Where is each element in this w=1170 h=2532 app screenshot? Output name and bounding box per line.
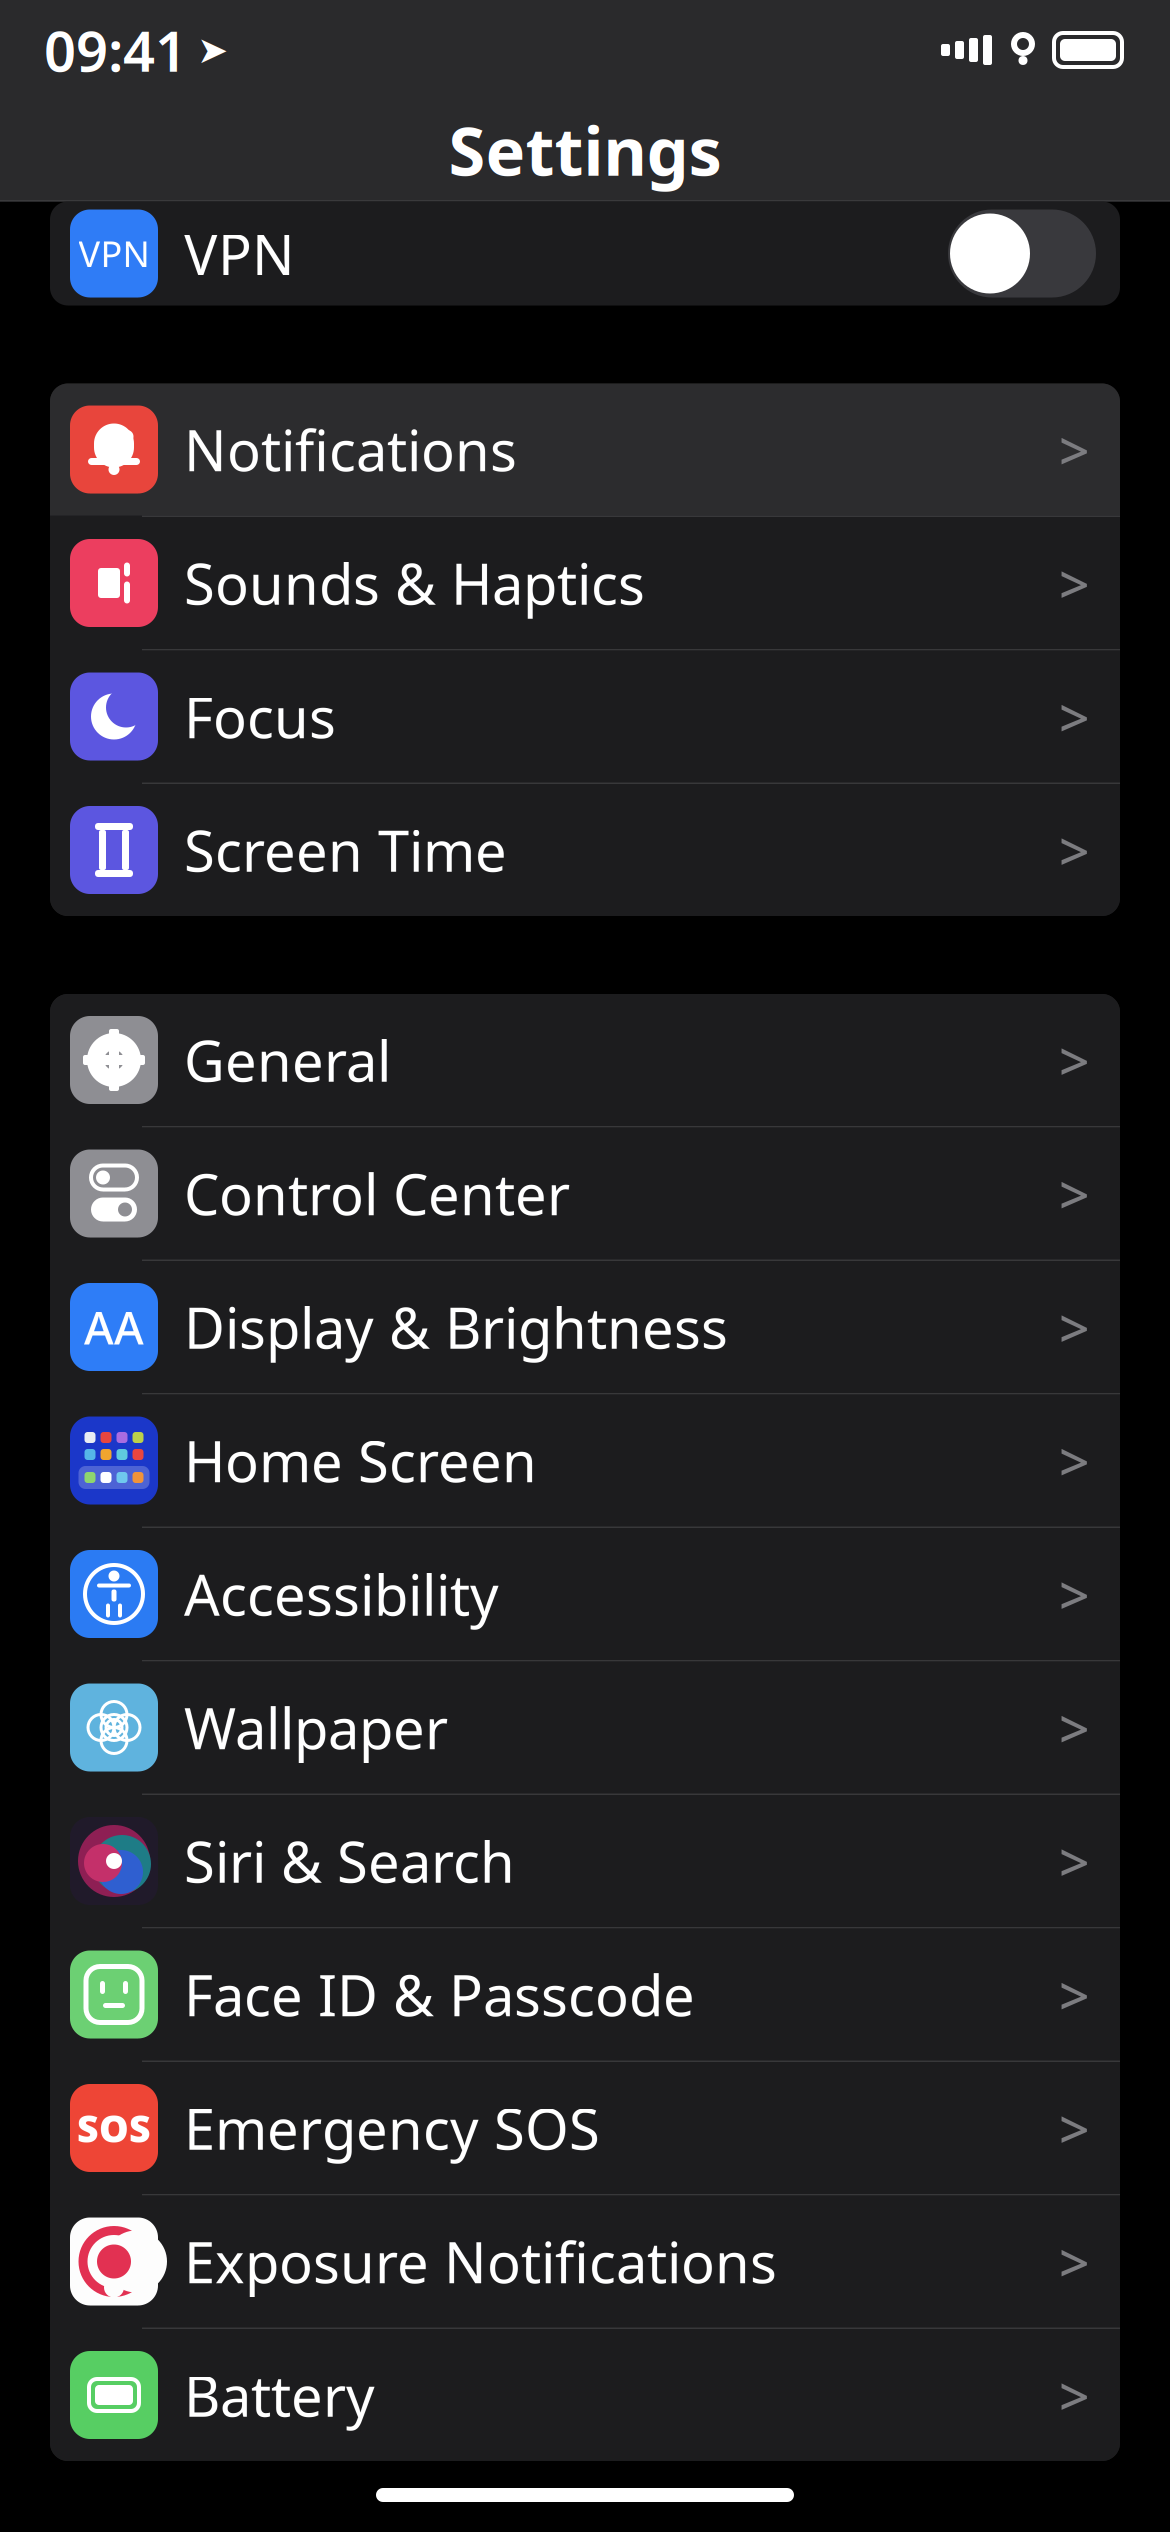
staticText: >: [1059, 681, 1090, 752]
staticText: >: [1059, 1959, 1090, 2030]
staticText: >: [1059, 2093, 1090, 2163]
button[interactable]: Accessibility: [50, 1528, 1120, 1660]
staticText: Screen Time: [184, 813, 507, 887]
button[interactable]: Focus: [50, 650, 1120, 782]
button[interactable]: VPN: [50, 201, 1120, 305]
staticText: VPN: [184, 216, 295, 291]
staticText: Home Screen: [184, 1423, 537, 1498]
staticText: Control Center: [184, 1156, 570, 1231]
staticText: SOS: [77, 2103, 151, 2153]
button[interactable]: Siri & Search: [50, 1795, 1120, 1927]
staticText: Wallpaper: [184, 1690, 448, 1765]
staticText: Settings: [448, 106, 721, 194]
staticText: Accessibility: [184, 1557, 499, 1631]
staticText: Display & Brightness: [184, 1290, 728, 1364]
staticText: >: [1059, 1692, 1090, 1763]
staticText: >: [1059, 1559, 1090, 1629]
button[interactable]: Face ID & Passcode: [50, 1928, 1120, 2060]
staticText: >: [1059, 1025, 1090, 1095]
staticText: >: [1059, 1158, 1090, 1229]
staticText: Exposure Notifications: [184, 2224, 777, 2299]
button[interactable]: Sounds & Haptics: [50, 517, 1120, 649]
staticText: Siri & Search: [184, 1824, 515, 1898]
staticText: >: [1059, 2226, 1090, 2297]
staticText: >: [1059, 414, 1090, 485]
staticText: General: [184, 1023, 391, 1097]
staticText: >: [1059, 1292, 1090, 1362]
staticText: Focus: [184, 679, 336, 754]
staticText: AA: [84, 1297, 144, 1357]
staticText: ➤: [197, 29, 228, 71]
button[interactable]: SOS: [50, 2062, 1120, 2194]
button[interactable]: Battery: [50, 2329, 1120, 2461]
staticText: Battery: [184, 2358, 375, 2432]
staticText: >: [1059, 2360, 1090, 2430]
staticText: >: [1059, 1425, 1090, 1496]
staticText: >: [1059, 548, 1090, 618]
button[interactable]: Screen Time: [50, 784, 1120, 916]
staticText: Face ID & Passcode: [184, 1957, 695, 2032]
button[interactable]: Wallpaper: [50, 1661, 1120, 1793]
button[interactable]: General: [50, 994, 1120, 1126]
staticText: >: [1059, 1826, 1090, 1896]
staticText: VPN: [78, 230, 149, 277]
button[interactable]: Exposure Notifications: [50, 2195, 1120, 2327]
staticText: >: [1059, 815, 1090, 885]
button[interactable]: Home Screen: [50, 1394, 1120, 1526]
staticText: 09:41: [44, 13, 187, 87]
staticText: Emergency SOS: [184, 2091, 600, 2165]
button[interactable]: AA: [50, 1261, 1120, 1393]
staticText: Notifications: [184, 412, 517, 487]
staticText: Sounds & Haptics: [184, 546, 645, 620]
button[interactable]: Settings: [0, 100, 1170, 200]
button[interactable]: Control Center: [50, 1127, 1120, 1259]
button[interactable]: Notifications: [50, 383, 1120, 515]
